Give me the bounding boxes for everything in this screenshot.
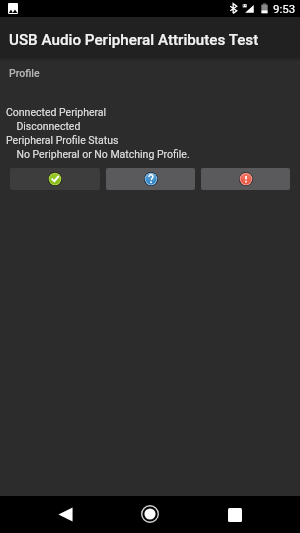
staticText: 9:53	[273, 2, 296, 15]
staticText: Profile	[9, 67, 40, 79]
button[interactable]: Fail	[201, 168, 290, 190]
staticText: USB Audio Peripheral Attributes Test	[9, 31, 259, 49]
button[interactable]: Recents	[223, 503, 247, 527]
button[interactable]: Info	[106, 168, 195, 190]
button[interactable]: Pass	[10, 168, 100, 190]
button[interactable]: Back	[53, 502, 77, 526]
button[interactable]: Home	[138, 502, 162, 526]
staticText: Connected Peripheral Disconnected Periph…	[6, 106, 190, 160]
